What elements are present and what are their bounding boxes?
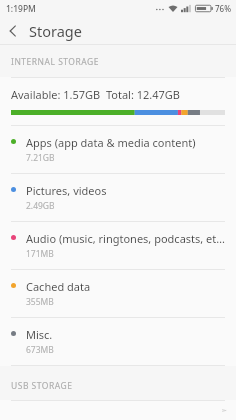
staticText: 76% [215, 3, 231, 14]
button[interactable]: Available: 1.57GB Total: 12.47GB [0, 78, 236, 125]
staticText: Misc. [26, 327, 53, 342]
staticText: 673MB [26, 344, 54, 356]
button[interactable]: Misc. [0, 318, 236, 365]
staticText: 7.21GB [26, 152, 55, 164]
button[interactable]: Cached data [0, 270, 236, 317]
staticText: Apps (app data & media content) [26, 135, 196, 150]
staticText: 2.49GB [26, 200, 55, 212]
staticText: USB STORAGE [11, 380, 73, 392]
staticText: 171MB [26, 248, 54, 260]
button[interactable]: Audio (music, ringtones, podcasts, etc.) [0, 222, 236, 269]
staticText: 1:19PM [6, 3, 36, 15]
staticText: Cached data [26, 279, 91, 294]
staticText: 355MB [26, 296, 54, 308]
staticText: Storage [29, 21, 82, 41]
button[interactable]: Pictures, videos [0, 174, 236, 221]
button[interactable]: Back [0, 18, 26, 44]
staticText: Audio (music, ringtones, podcasts, etc.) [26, 231, 225, 246]
staticText: Available: 1.57GB Total: 12.47GB [11, 87, 181, 102]
staticText: INTERNAL STORAGE [11, 56, 99, 68]
staticText: Pictures, videos [26, 183, 107, 198]
button[interactable]: Apps (app data & media content) [0, 126, 236, 173]
